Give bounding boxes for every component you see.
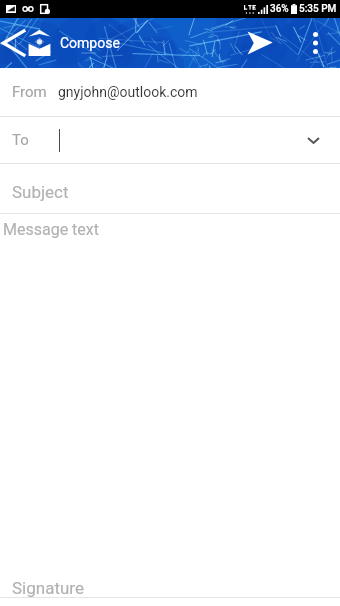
button[interactable]: Show CC and BCC: [293, 120, 333, 160]
staticText: Message text: [3, 220, 99, 239]
staticText: gnyjohn@outlook.com: [58, 84, 198, 100]
button[interactable]: Subject: [0, 164, 340, 213]
staticText: Signature: [12, 578, 84, 597]
button[interactable]: From: [0, 68, 340, 116]
staticText: 5:35 PM: [299, 3, 337, 15]
button[interactable]: Message text: [0, 214, 340, 570]
staticText: Subject: [12, 182, 69, 202]
button[interactable]: More options: [300, 25, 330, 61]
staticText: 36%: [270, 3, 289, 15]
staticText: To: [12, 131, 29, 149]
button[interactable]: Back: [0, 26, 28, 60]
button[interactable]: To: [0, 117, 340, 163]
staticText: Compose: [60, 35, 120, 51]
button[interactable]: Signature: [0, 570, 340, 597]
staticText: From: [12, 83, 47, 101]
button[interactable]: Send: [237, 25, 283, 61]
